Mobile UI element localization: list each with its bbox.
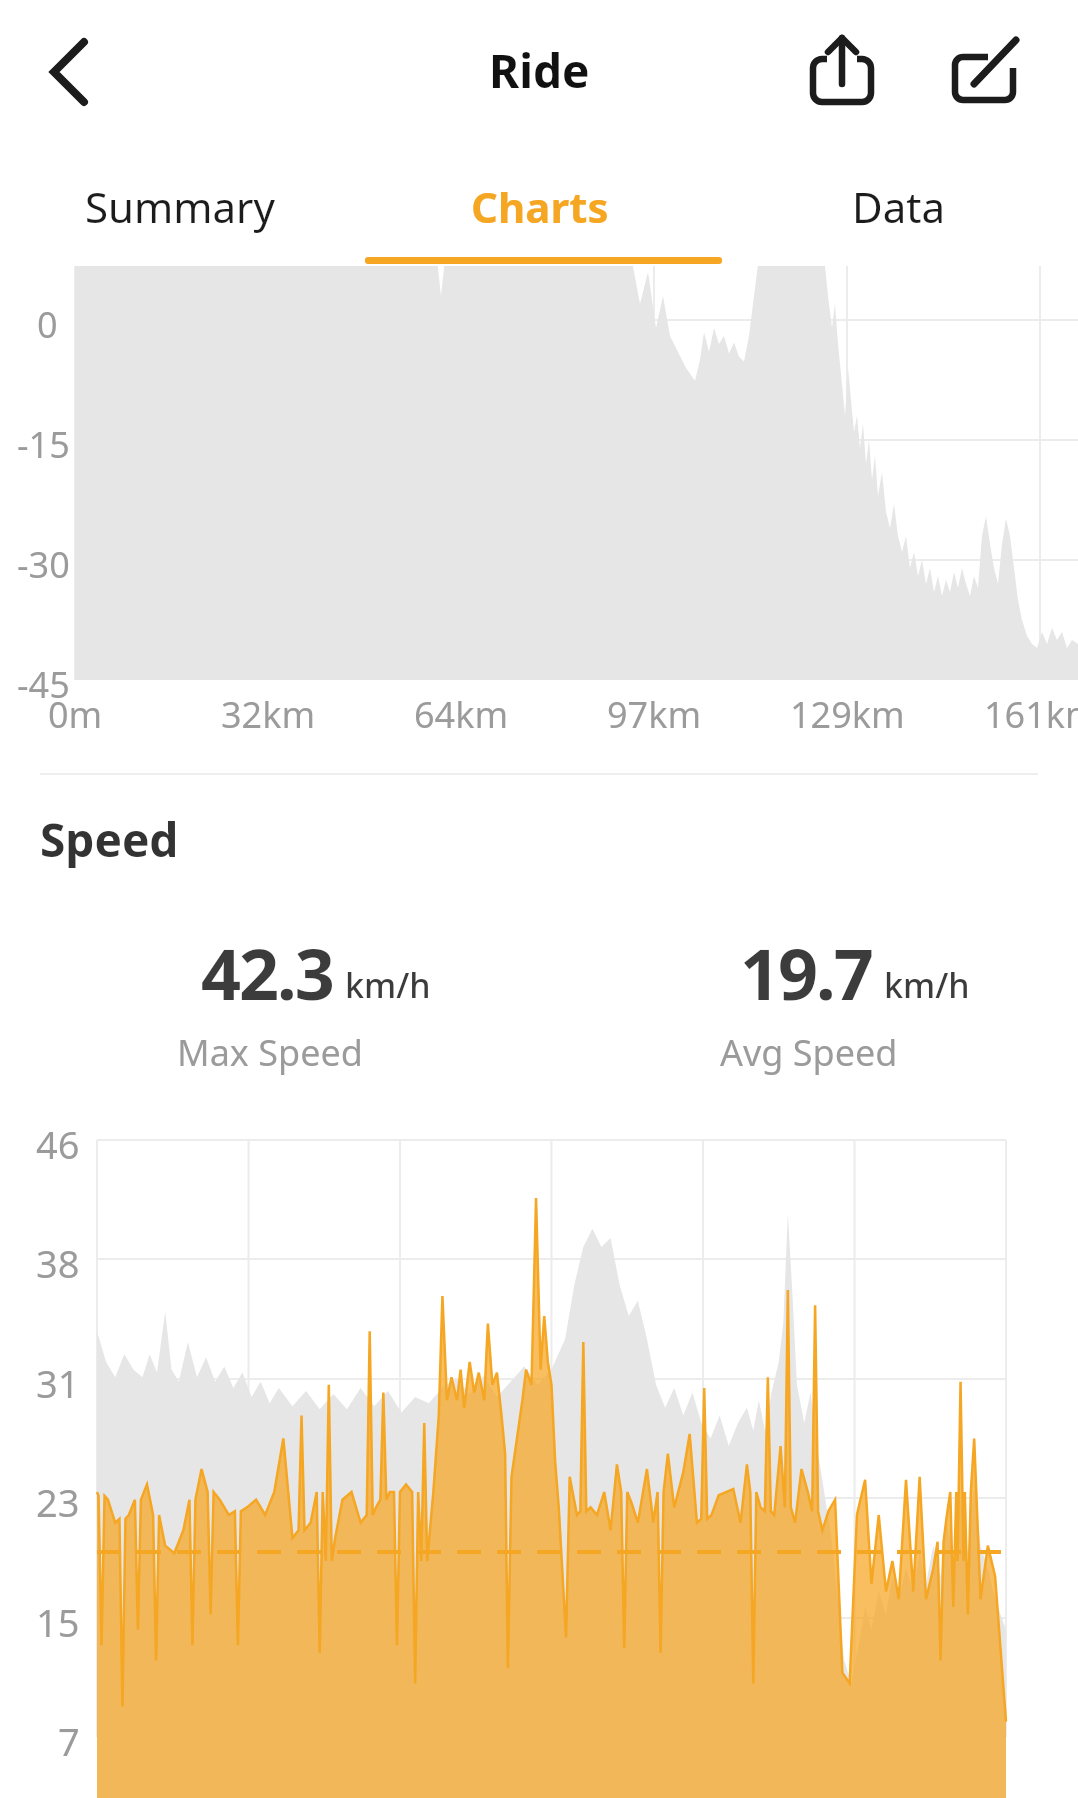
staticText: 0m [48,690,103,739]
button[interactable]: Summary [0,152,360,260]
staticText: 15 [36,1596,80,1648]
staticText: km/h [884,962,970,1008]
button[interactable] [800,26,890,114]
button[interactable] [30,30,110,114]
staticText: Max Speed [177,1028,363,1077]
staticText: 161km [984,690,1078,739]
staticText: 46 [36,1118,80,1170]
staticText: 7 [58,1715,80,1767]
staticText: Avg Speed [720,1028,898,1077]
staticText: -15 [17,420,70,469]
staticText: Summary [85,178,275,235]
button[interactable]: Charts [360,152,719,260]
staticText: Speed [40,808,179,871]
staticText: -30 [17,540,70,589]
staticText: 38 [36,1237,80,1289]
staticText: 64km [414,690,509,739]
staticText: Ride [489,39,590,102]
staticText: Data [852,178,945,235]
staticText: 0 [37,300,58,349]
staticText: 32km [221,690,316,739]
button[interactable] [940,26,1030,114]
staticText: 97km [607,690,702,739]
staticText: 31 [36,1357,80,1409]
staticText: -45 [17,660,70,709]
staticText: 129km [790,690,905,739]
staticText: km/h [345,962,431,1008]
staticText: Charts [471,178,609,235]
button[interactable]: Data [719,152,1078,260]
staticText: 42.3 [201,925,333,1020]
staticText: 23 [36,1476,80,1528]
staticText: 19.7 [740,925,872,1020]
